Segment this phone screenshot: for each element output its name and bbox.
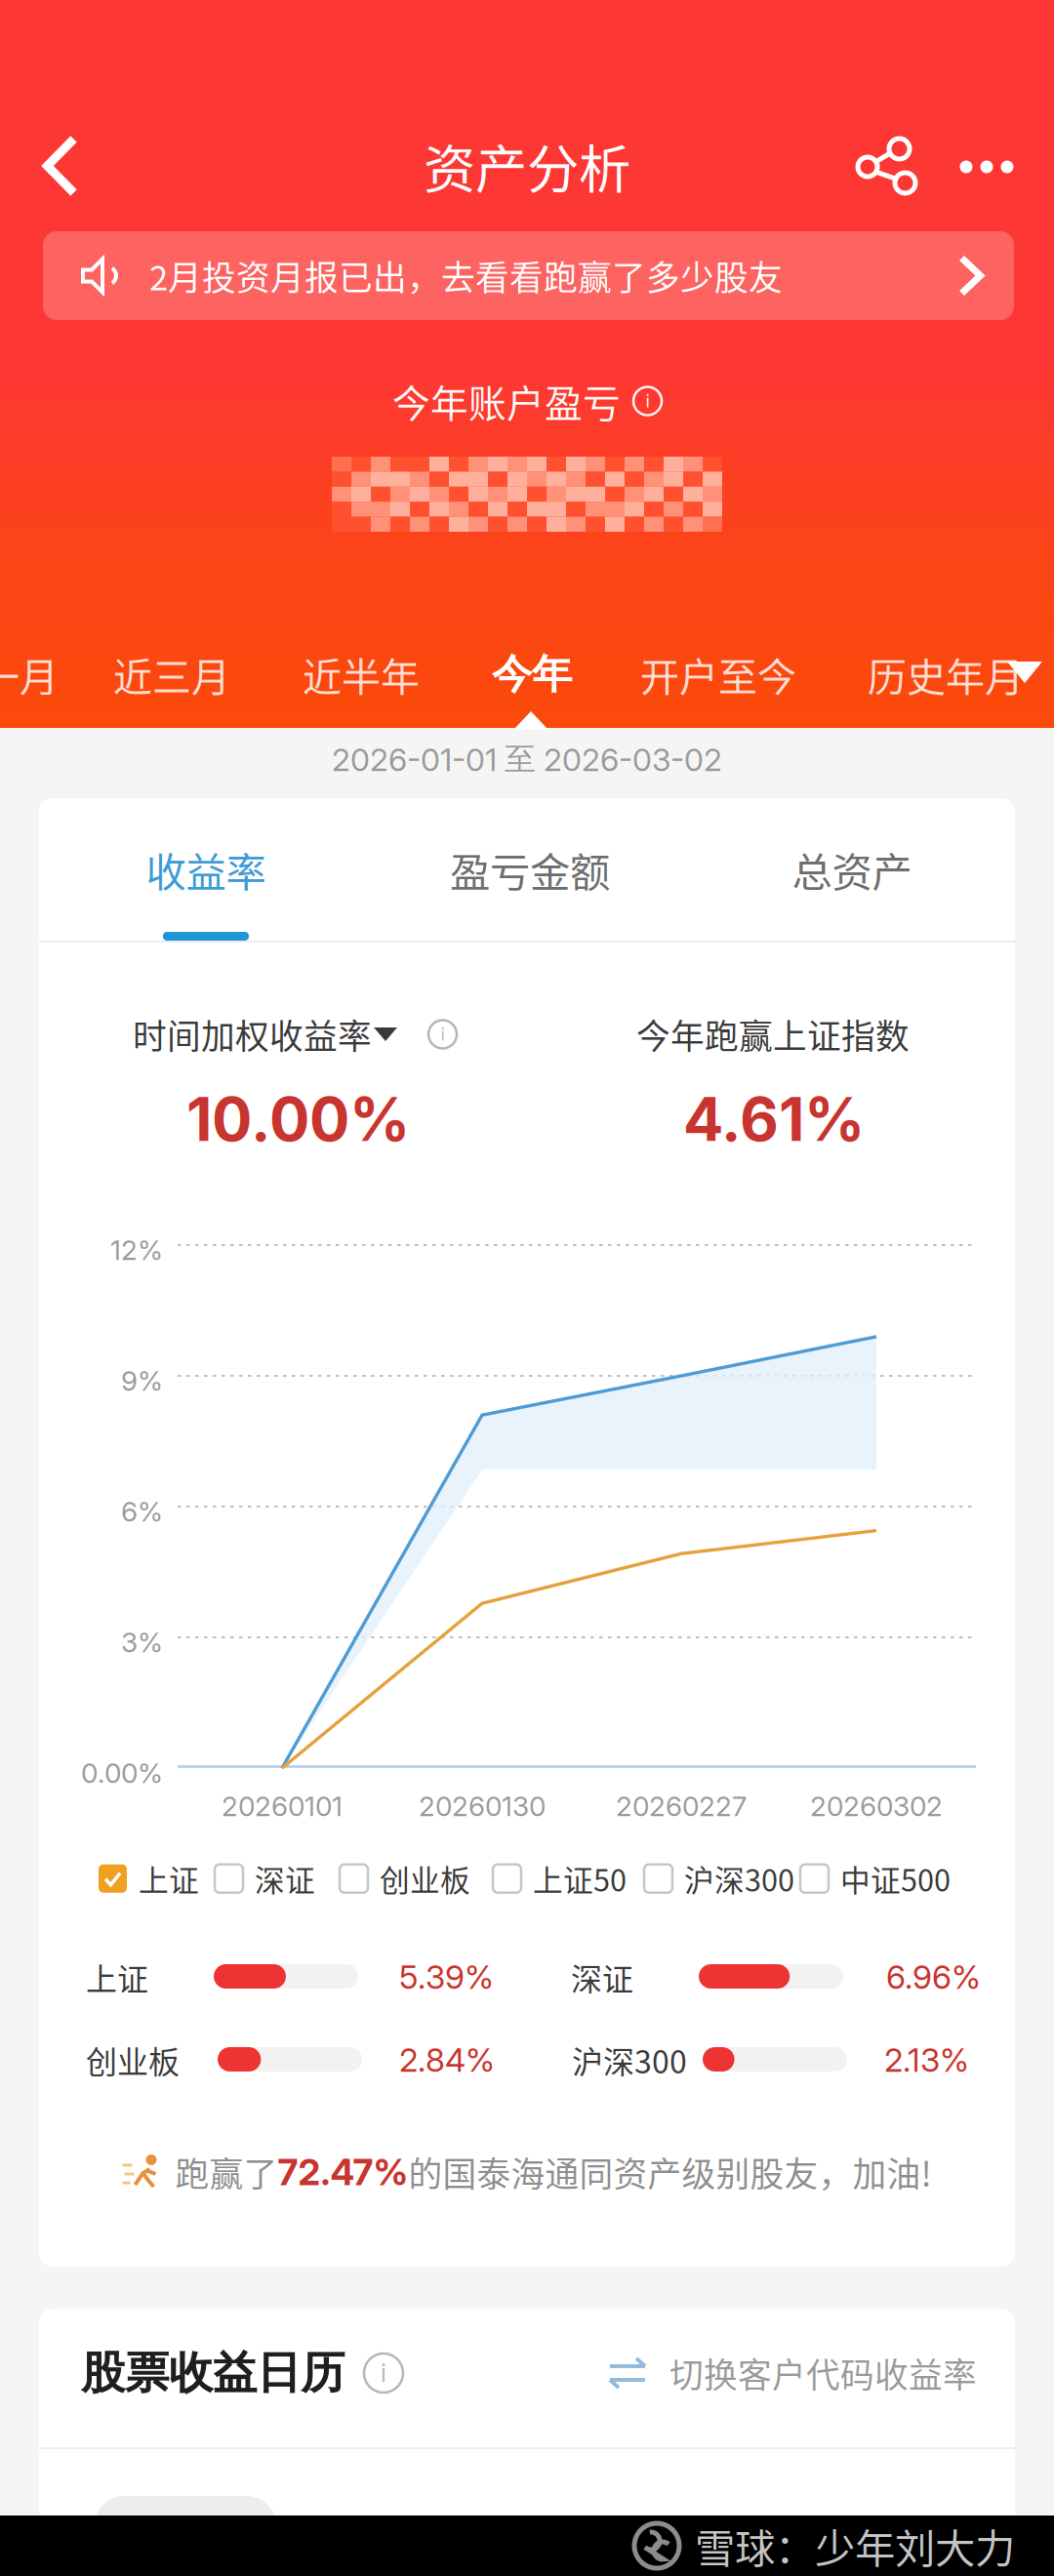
staticText: i [646, 390, 649, 412]
staticText: 4.61% [683, 1083, 865, 1155]
button[interactable]: Back [34, 135, 87, 197]
staticText: 3% [121, 1626, 163, 1659]
staticText: 今年账户盈亏 [392, 374, 621, 428]
staticText: 5.39% [399, 1957, 494, 1996]
staticText: 20260227 [616, 1790, 747, 1823]
staticText: 历史年月 [868, 646, 1024, 702]
staticText: 一月 [0, 646, 59, 702]
staticText: 10.00% [186, 1083, 410, 1155]
staticText: 深证 [255, 1857, 315, 1900]
staticText: 总资产 [792, 840, 912, 899]
button[interactable]: 近半年 [303, 652, 420, 697]
staticText: 0.00% [81, 1756, 163, 1790]
staticText: 深证 [571, 1954, 633, 1999]
staticText: 20260302 [810, 1790, 943, 1823]
button[interactable]: 开户至今 [640, 652, 796, 697]
staticText: i [381, 2358, 386, 2388]
button[interactable]: 深证 [215, 1857, 315, 1900]
staticText: 2026-01-01 至 2026-03-02 [332, 739, 722, 779]
button[interactable]: Share [835, 117, 939, 217]
button[interactable]: 切换客户代码收益率 [608, 2352, 977, 2395]
staticText: 2.84% [399, 2040, 495, 2079]
button[interactable]: 上证50 [493, 1857, 627, 1900]
staticText: 上证 [139, 1857, 199, 1900]
staticText: 沪深300 [684, 1857, 794, 1900]
staticText: 上证50 [533, 1857, 627, 1900]
staticText: i [441, 1024, 445, 1045]
staticText: 2.13% [884, 2040, 969, 2079]
staticText: 时间加权收益率 [133, 1010, 372, 1059]
button[interactable]: 沪深300 [644, 1857, 794, 1900]
staticText: 收益率 [146, 840, 266, 899]
button[interactable]: 今年 [492, 650, 572, 699]
staticText: 12% [110, 1233, 163, 1267]
staticText: 近半年 [303, 646, 420, 702]
staticText: 近三月 [113, 646, 230, 702]
staticText: 72.47% [278, 2150, 408, 2194]
staticText: 创业板 [380, 1857, 470, 1900]
staticText: 6.96% [886, 1957, 981, 1996]
button[interactable]: 历史年月 [868, 652, 1024, 697]
button[interactable]: 盈亏金额 [393, 818, 667, 921]
staticText: 今年跑赢上证指数 [636, 1010, 910, 1059]
staticText: 2月投资月报已出，去看看跑赢了多少股友 [149, 251, 783, 300]
button[interactable]: 2月投资月报已出，去看看跑赢了多少股友 [43, 231, 1014, 320]
staticText: 跑赢了 [175, 2148, 278, 2197]
button[interactable]: 上证 [99, 1857, 199, 1900]
button[interactable]: More [939, 117, 1034, 217]
staticText: 9% [121, 1364, 163, 1397]
staticText: 资产分析 [424, 128, 630, 204]
staticText: 20260130 [419, 1790, 546, 1823]
staticText: 的国泰海通同资产级别股友，加油! [408, 2148, 932, 2197]
staticText: 盈亏金额 [450, 840, 610, 899]
staticText: 创业板 [86, 2037, 180, 2082]
staticText: 6% [121, 1495, 163, 1528]
staticText: 切换客户代码收益率 [669, 2349, 977, 2398]
staticText: 沪深300 [572, 2037, 687, 2082]
staticText: 今年 [492, 649, 572, 700]
staticText: 股票收益日历 [81, 2345, 345, 2401]
button[interactable]: 中证500 [800, 1857, 951, 1900]
staticText: 中证500 [840, 1857, 951, 1900]
staticText: 开户至今 [640, 646, 796, 702]
button[interactable]: 总资产 [715, 818, 989, 921]
button[interactable]: 创业板 [340, 1857, 470, 1900]
staticText: 上证 [86, 1954, 148, 1999]
button[interactable]: 收益率 [69, 818, 343, 921]
button[interactable]: 近三月 [113, 652, 230, 697]
staticText: 20260101 [222, 1790, 343, 1823]
staticText: 雪球：少年刘大力 [695, 2517, 1015, 2575]
